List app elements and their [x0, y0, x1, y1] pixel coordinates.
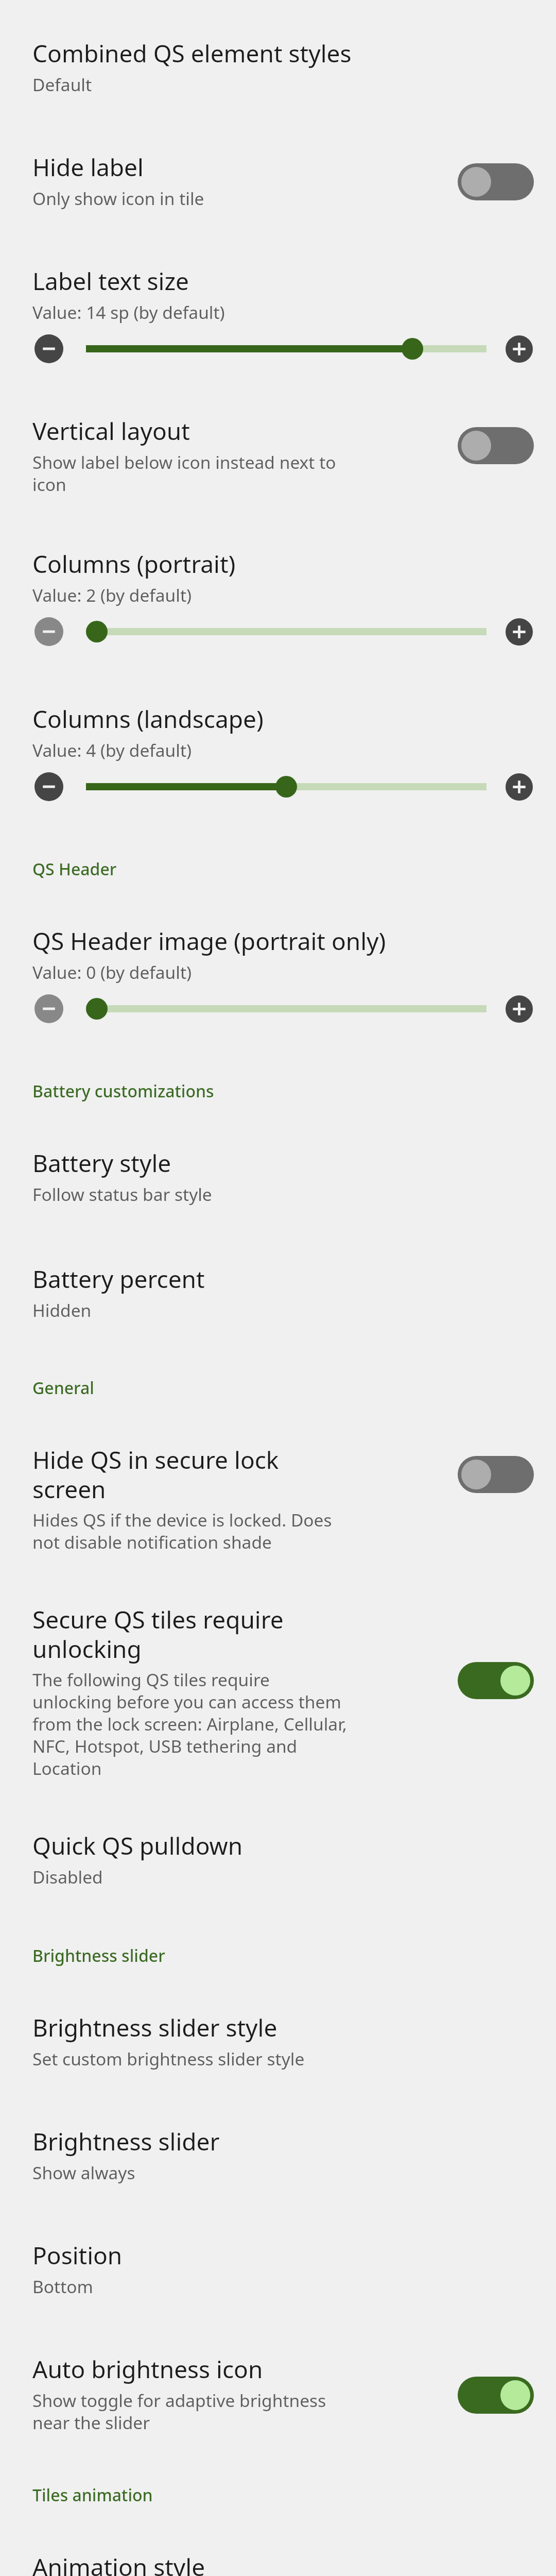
button[interactable]: QS Header image (portrait only)	[0, 925, 556, 984]
button[interactable]: Decrease	[34, 772, 63, 801]
button[interactable]: Secure QS tiles require unlocking	[458, 1662, 534, 1699]
staticText: Secure QS tiles require unlocking	[32, 1603, 350, 1665]
staticText: Hidden	[32, 1298, 92, 1322]
staticText: The following QS tiles require unlocking…	[32, 1668, 350, 1780]
button[interactable]: Brightness slider style	[0, 2011, 556, 2071]
button[interactable]: Hide QS in secure lock screen	[0, 1444, 556, 1554]
button[interactable]: Position	[0, 2239, 556, 2298]
staticText: Follow status bar style	[32, 1182, 212, 1206]
staticText: Animation style	[32, 2551, 205, 2576]
staticText: Position	[32, 2239, 123, 2272]
staticText: Show label below icon instead next to ic…	[32, 450, 350, 496]
staticText: Only show icon in tile	[32, 187, 204, 210]
button[interactable]: Secure QS tiles require unlocking	[0, 1603, 556, 1780]
staticText: Vertical layout	[32, 415, 190, 447]
button[interactable]: Decrease	[34, 994, 63, 1023]
staticText: Brightness slider	[32, 1944, 165, 1967]
staticText: Battery style	[32, 1147, 171, 1179]
staticText: Brightness slider style	[32, 2011, 277, 2044]
staticText: Bottom	[32, 2275, 93, 2298]
staticText: Combined QS element styles	[32, 37, 352, 70]
button[interactable]: Increase	[506, 995, 533, 1023]
staticText: Auto brightness icon	[32, 2353, 263, 2385]
staticText: Hide QS in secure lock screen	[32, 1444, 350, 1505]
staticText: Value: 4 (by default)	[32, 738, 192, 762]
button[interactable]: Brightness slider	[0, 2125, 556, 2184]
staticText: Hides QS if the device is locked. Does n…	[32, 1508, 350, 1554]
button[interactable]: Battery style	[0, 1147, 556, 1206]
staticText: Brightness slider	[32, 2125, 220, 2158]
staticText: QS Header image (portrait only)	[32, 925, 386, 957]
button[interactable]: Battery percent	[0, 1263, 556, 1322]
button[interactable]: Vertical layout	[0, 415, 556, 496]
staticText: Show toggle for adaptive brightness near…	[32, 2388, 350, 2434]
button[interactable]: Decrease	[34, 617, 63, 646]
button[interactable]: Increase	[506, 773, 533, 801]
button[interactable]: Columns (portrait)	[0, 548, 556, 607]
button[interactable]: Auto brightness icon	[0, 2353, 556, 2434]
staticText: Default	[32, 73, 92, 96]
button[interactable]: Hide label	[458, 163, 534, 200]
button[interactable]: Increase	[506, 335, 533, 363]
staticText: Columns (portrait)	[32, 548, 236, 580]
staticText: Set custom brightness slider style	[32, 2047, 305, 2071]
staticText: Tiles animation	[32, 2484, 153, 2506]
button[interactable]: Hide label	[0, 151, 556, 210]
button[interactable]: Auto brightness icon	[458, 2377, 534, 2414]
staticText: Value: 14 sp (by default)	[32, 300, 225, 324]
button[interactable]: Quick QS pulldown	[0, 1829, 556, 1889]
button[interactable]: Increase	[506, 618, 533, 646]
staticText: QS Header	[32, 858, 117, 880]
button[interactable]: Decrease	[34, 334, 63, 363]
button[interactable]: Columns (landscape)	[0, 703, 556, 762]
staticText: Battery percent	[32, 1263, 205, 1295]
button[interactable]: Vertical layout	[458, 427, 534, 464]
staticText: Value: 2 (by default)	[32, 583, 192, 607]
button[interactable]: Label text size	[0, 265, 556, 324]
staticText: Columns (landscape)	[32, 703, 264, 735]
button[interactable]: Hide QS in secure lock screen	[458, 1456, 534, 1493]
staticText: Battery customizations	[32, 1080, 214, 1103]
staticText: Show always	[32, 2161, 135, 2184]
staticText: Value: 0 (by default)	[32, 960, 192, 984]
staticText: Hide label	[32, 151, 144, 183]
button[interactable]: Combined QS element styles	[0, 37, 556, 96]
staticText: Disabled	[32, 1865, 103, 1889]
staticText: General	[32, 1377, 94, 1399]
staticText: Label text size	[32, 265, 189, 297]
staticText: Quick QS pulldown	[32, 1829, 243, 1862]
button[interactable]: Animation style	[0, 2551, 556, 2576]
